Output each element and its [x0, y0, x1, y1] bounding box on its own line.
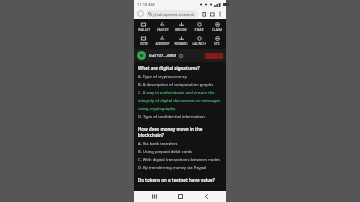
button[interactable]: B. Using prepaid debit cards — [138, 148, 222, 156]
staticText: C. A way to authenticate and ensure the — [138, 90, 215, 96]
staticText: CLAIM — [212, 28, 222, 32]
staticText: A. Via bank transfers — [138, 141, 178, 147]
staticText: LAUNCH — [192, 42, 206, 46]
button[interactable]: B. A description of computation graphs — [138, 81, 222, 89]
button[interactable]: 0x0107...4988 — [149, 53, 183, 59]
button[interactable]: A. Via bank transfers — [138, 140, 222, 148]
button[interactable]: BRIDGE — [172, 21, 190, 33]
button[interactable]: LAUNCH — [190, 35, 208, 47]
staticText: using cryptography — [138, 106, 176, 112]
button[interactable]: D. Type of confidential information — [138, 113, 222, 121]
button[interactable]: WALLET — [134, 21, 153, 33]
staticText: D. By transferring money via Paypal — [138, 165, 207, 171]
staticText: C. With digital transactions between nod… — [138, 157, 220, 163]
staticText: integrity of digital documents or messag… — [138, 98, 221, 104]
staticText: Do tokens on a testnet have value? — [138, 177, 215, 183]
button[interactable]: VOTE — [134, 35, 153, 47]
button[interactable]: Account avatar — [137, 51, 146, 60]
button[interactable]: Profile — [137, 10, 144, 17]
button[interactable]: using cryptography — [138, 105, 222, 113]
staticText: What are digital signatures? — [138, 65, 200, 71]
button[interactable]: Home — [174, 191, 186, 202]
button[interactable]: C. A way to authenticate and ensure the — [138, 89, 222, 97]
staticText: 0x0107...4988 — [149, 53, 177, 59]
staticText: D. Type of confidential information — [138, 114, 205, 120]
staticText: 11:18 AM — [137, 2, 155, 7]
button[interactable]: j-hub.openex-network — [146, 10, 198, 18]
staticText: AIRDROP — [155, 42, 170, 46]
button[interactable]: D. By transferring money via Paypal — [138, 164, 222, 172]
button[interactable]: Back — [200, 191, 212, 202]
staticText: j-hub.openex-network — [153, 12, 195, 17]
staticText: STAKE — [194, 28, 204, 32]
button[interactable]: Disconnect — [205, 53, 223, 59]
button[interactable]: CLAIM — [208, 21, 226, 33]
staticText: How does money move in the blockchain? — [138, 126, 222, 138]
staticText: FAUCET — [157, 28, 169, 32]
staticText: WALLET — [138, 28, 150, 32]
button[interactable]: Recent apps — [148, 191, 160, 202]
button[interactable]: AIRDROP — [153, 35, 172, 47]
button[interactable]: ETC — [208, 35, 226, 47]
button[interactable]: More options — [216, 10, 223, 17]
button[interactable]: STAKE — [190, 21, 208, 33]
button[interactable]: Tabs — [208, 10, 216, 18]
staticText: A. Type of cryptocurrency — [138, 74, 187, 80]
staticText: B. Using prepaid debit cards — [138, 149, 193, 155]
button[interactable]: Share — [200, 10, 208, 18]
staticText: REWARD — [174, 42, 188, 46]
staticText: ETC — [214, 42, 220, 46]
button[interactable]: integrity of digital documents or messag… — [138, 97, 222, 105]
staticText: BRIDGE — [175, 28, 187, 32]
button[interactable]: REWARD — [172, 35, 190, 47]
button[interactable]: A. Type of cryptocurrency — [138, 73, 222, 81]
staticText: B. A description of computation graphs — [138, 82, 214, 88]
button[interactable]: FAUCET — [153, 21, 172, 33]
button[interactable]: C. With digital transactions between nod… — [138, 156, 222, 164]
staticText: VOTE — [140, 42, 148, 46]
